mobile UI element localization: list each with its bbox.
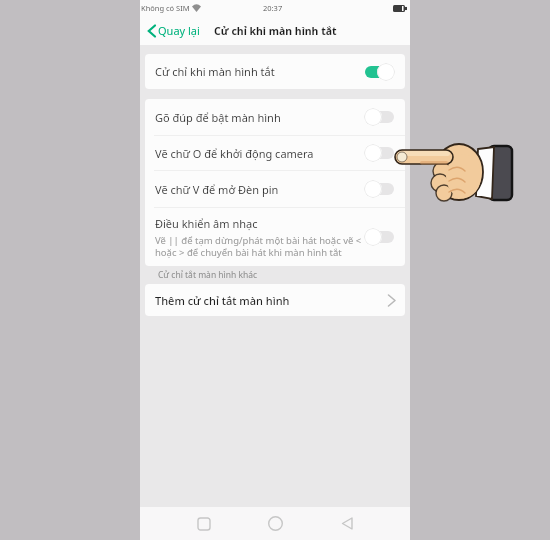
button[interactable] [364, 108, 395, 126]
button[interactable] [364, 144, 395, 162]
button[interactable] [364, 63, 395, 81]
button[interactable] [311, 507, 382, 540]
staticText: Vẽ chữ O để khởi động camera [155, 146, 364, 161]
staticText: Vẽ chữ V để mở Đèn pin [155, 182, 364, 197]
staticText: Thêm cử chỉ tắt màn hình [155, 293, 388, 308]
staticText: Cử chỉ khi màn hình tắt [155, 64, 364, 79]
button[interactable]: Quay lại [148, 23, 200, 38]
staticText: Điều khiển âm nhạc [155, 216, 258, 231]
button[interactable]: Vẽ chữ O để khởi động camera [145, 136, 405, 170]
staticText: Cử chỉ tắt màn hình khác [158, 269, 258, 281]
staticText: Gõ đúp để bật màn hình [155, 110, 364, 125]
button[interactable]: Thêm cử chỉ tắt màn hình [145, 284, 405, 316]
button[interactable]: Cử chỉ khi màn hình tắt [145, 54, 405, 89]
button[interactable] [240, 507, 311, 540]
button[interactable] [364, 180, 395, 198]
button[interactable] [168, 507, 240, 540]
staticText: Không có SIM [141, 3, 190, 13]
staticText: 20:37 [263, 3, 283, 13]
staticText: Quay lại [158, 23, 200, 38]
staticText: Vẽ || để tạm dừng/phát một bài hát hoặc … [155, 234, 362, 259]
button[interactable]: Gõ đúp để bật màn hình [145, 99, 405, 135]
button[interactable] [364, 228, 395, 246]
button[interactable]: Vẽ chữ V để mở Đèn pin [145, 171, 405, 207]
button[interactable]: Điều khiển âm nhạc [145, 208, 405, 266]
staticText: Cử chỉ khi màn hình tắt [214, 24, 337, 38]
